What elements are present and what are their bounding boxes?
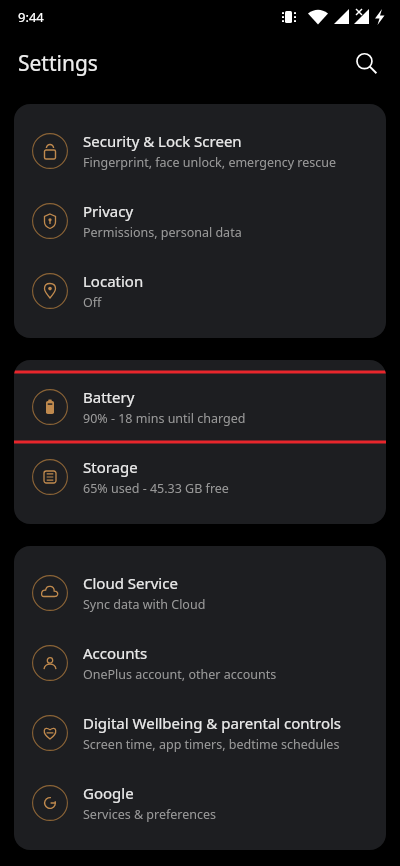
staticText: Digital Wellbeing & parental controls <box>83 713 342 733</box>
staticText: Settings <box>18 49 98 78</box>
staticText: 65% used - 45.33 GB free <box>83 480 229 497</box>
button[interactable]: Search <box>344 41 388 85</box>
button[interactable]: Cloud Service <box>14 558 386 628</box>
button[interactable]: Digital Wellbeing & parental controls <box>14 698 386 768</box>
button[interactable]: Accounts <box>14 628 386 698</box>
staticText: Battery <box>83 387 135 407</box>
staticText: Security & Lock Screen <box>83 131 242 151</box>
staticText: Google <box>83 783 134 803</box>
staticText: Cloud Service <box>83 573 178 593</box>
button[interactable]: Security & Lock Screen <box>14 116 386 186</box>
staticText: OnePlus account, other accounts <box>83 666 277 683</box>
staticText: Sync data with Cloud <box>83 596 206 613</box>
button[interactable]: Battery <box>14 372 386 442</box>
staticText: Storage <box>83 457 138 477</box>
button[interactable]: Storage <box>14 442 386 512</box>
staticText: Privacy <box>83 201 134 221</box>
button[interactable]: Location <box>14 256 386 326</box>
button[interactable]: Google <box>14 768 386 838</box>
staticText: Accounts <box>83 643 148 663</box>
staticText: 90% - 18 mins until charged <box>83 410 246 427</box>
staticText: Screen time, app timers, bedtime schedul… <box>83 736 340 753</box>
button[interactable]: Privacy <box>14 186 386 256</box>
staticText: 9:44 <box>18 8 44 26</box>
staticText: Permissions, personal data <box>83 224 242 241</box>
staticText: Off <box>83 294 102 311</box>
staticText: Fingerprint, face unlock, emergency resc… <box>83 154 337 171</box>
staticText: Services & preferences <box>83 806 217 823</box>
staticText: Location <box>83 271 144 291</box>
